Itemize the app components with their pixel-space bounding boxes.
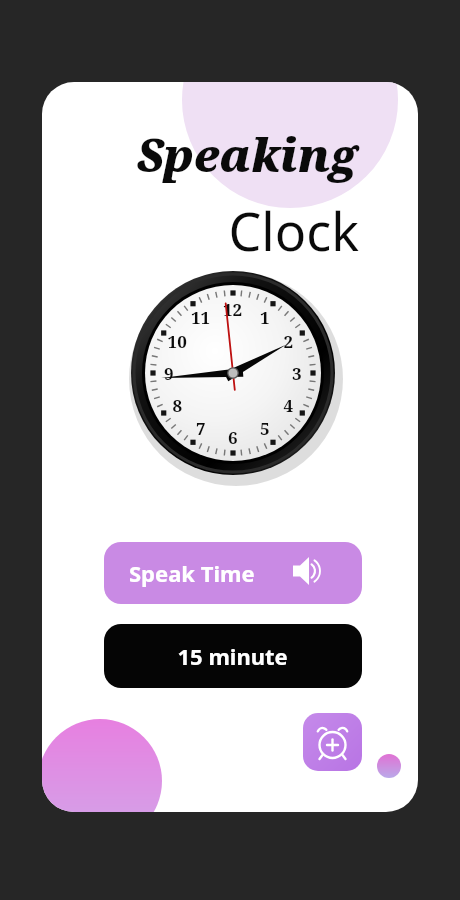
button[interactable]	[104, 624, 362, 688]
button[interactable]: Add alarm	[303, 713, 362, 771]
button[interactable]	[104, 542, 362, 604]
